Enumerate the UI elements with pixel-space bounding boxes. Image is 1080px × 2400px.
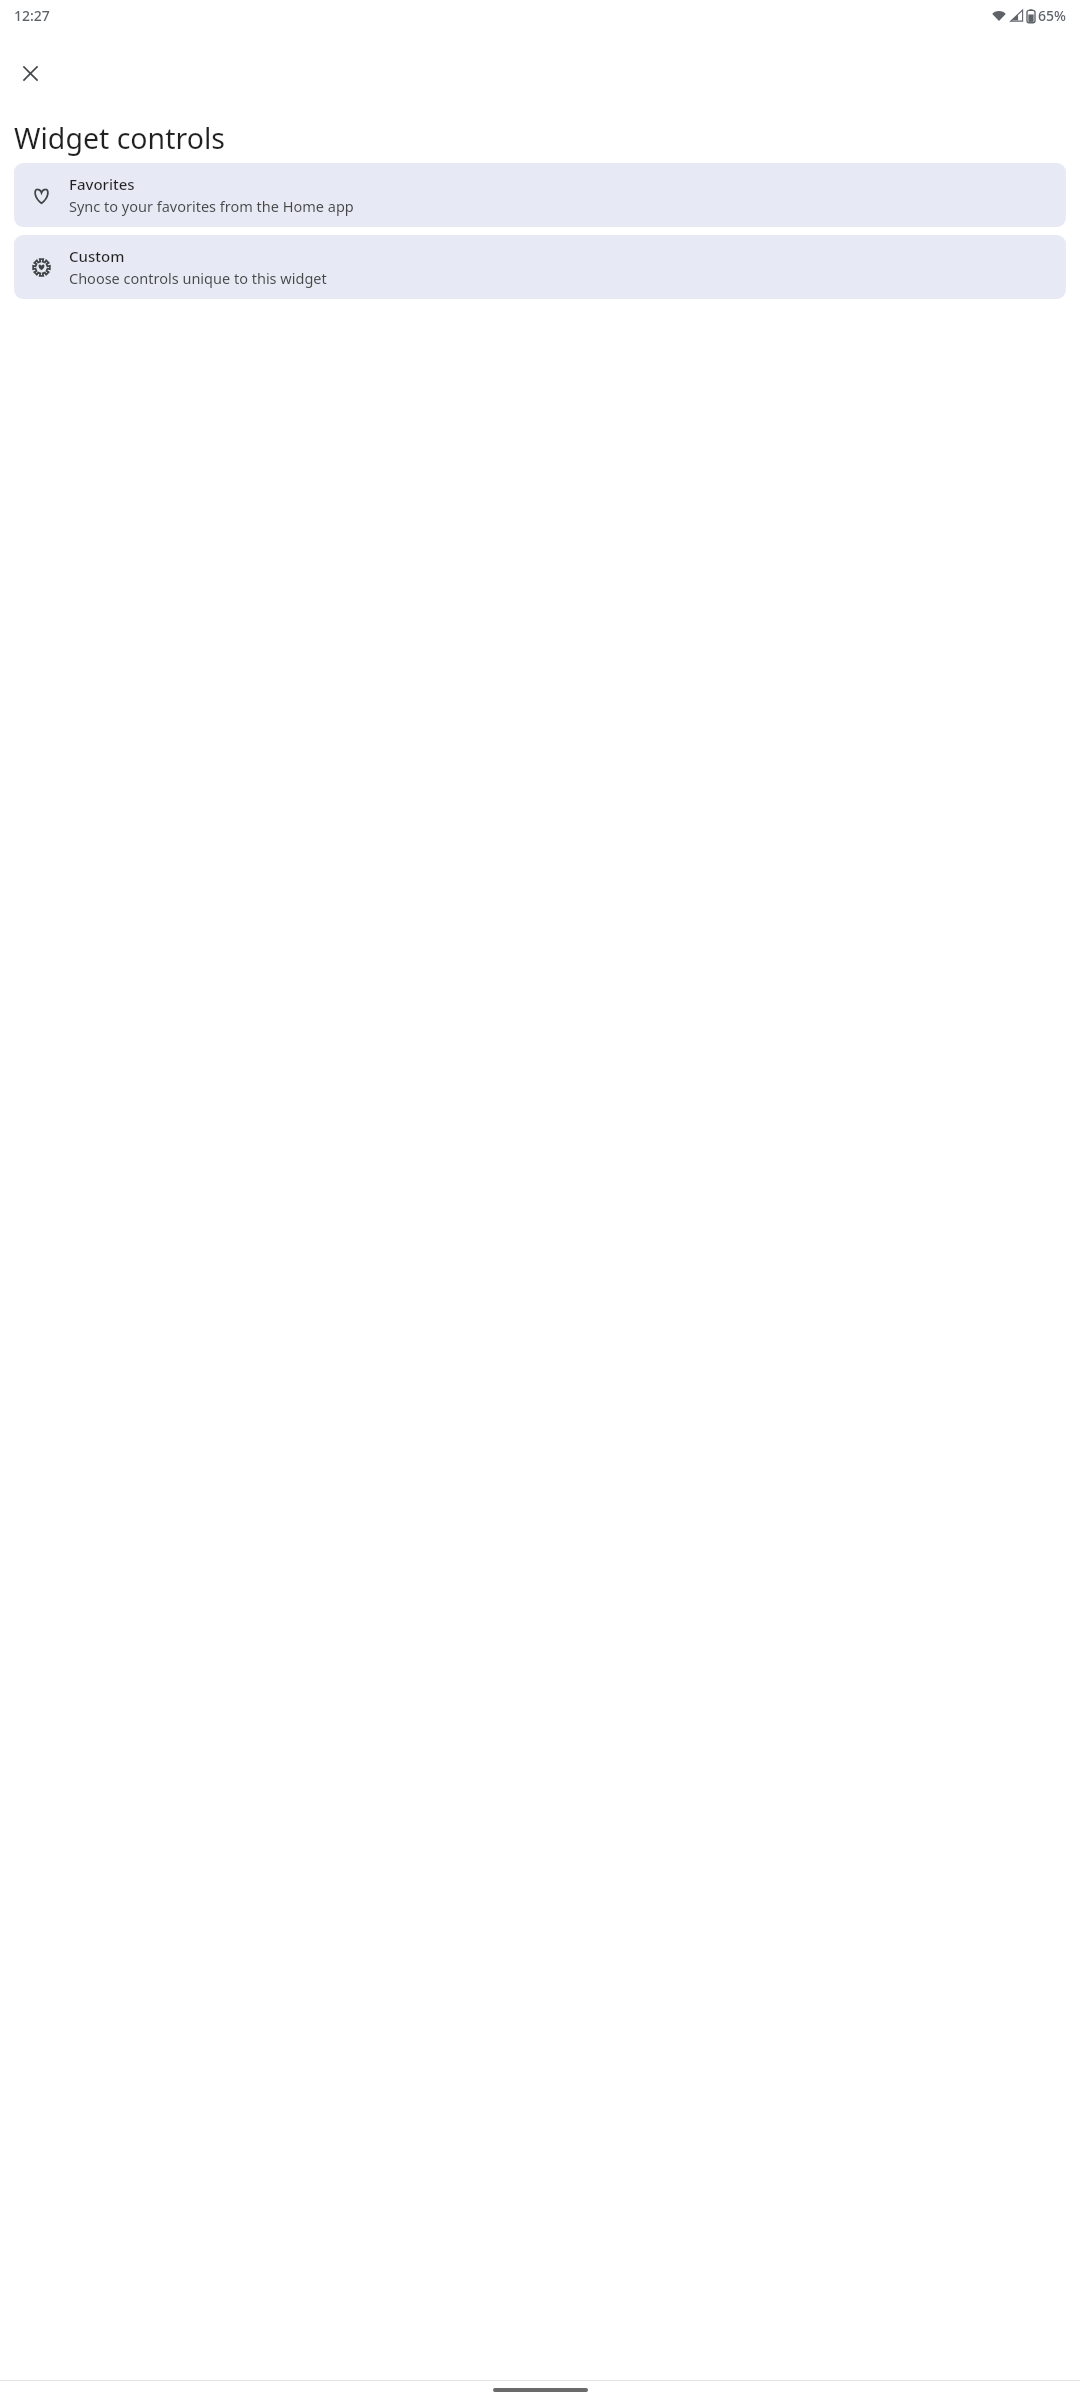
staticText: 65% xyxy=(1038,6,1066,25)
staticText: Sync to your favorites from the Home app xyxy=(69,196,354,216)
button[interactable]: Favorites xyxy=(14,163,1066,227)
button[interactable]: Close xyxy=(8,51,52,95)
staticText: Choose controls unique to this widget xyxy=(69,268,327,288)
staticText: Widget controls xyxy=(14,119,225,158)
staticText: Favorites xyxy=(69,174,135,194)
staticText: Custom xyxy=(69,246,125,266)
staticText: 12:27 xyxy=(14,6,50,25)
button[interactable]: Custom xyxy=(14,235,1066,299)
